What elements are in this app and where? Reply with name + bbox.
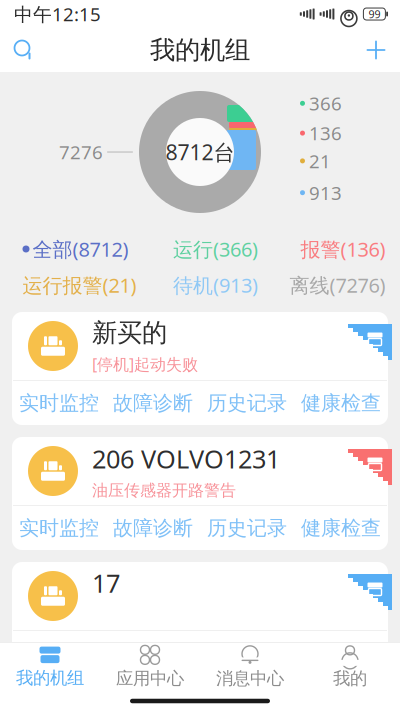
button[interactable]: 运行(366) bbox=[155, 236, 275, 262]
button[interactable]: 应用中心 bbox=[100, 643, 200, 691]
button[interactable]: 我的机组 bbox=[0, 643, 100, 691]
button[interactable]: 报警(136) bbox=[275, 236, 399, 262]
staticText: 我的 bbox=[333, 668, 367, 689]
staticText: [停机]起动失败 bbox=[92, 353, 198, 375]
button[interactable]: 实时监控 bbox=[12, 381, 106, 425]
button[interactable]: 历史记录 bbox=[200, 631, 294, 675]
staticText: 健康检查 bbox=[301, 391, 381, 415]
staticText: 7276 bbox=[59, 140, 103, 164]
button[interactable]: 待机(913) bbox=[155, 272, 275, 298]
button[interactable]: 离线(7276) bbox=[275, 272, 399, 298]
staticText: 913 bbox=[309, 180, 342, 205]
button[interactable]: 故障诊断 bbox=[106, 381, 200, 425]
staticText: 全部(8712) bbox=[32, 236, 128, 262]
button[interactable]: 故障诊断 bbox=[106, 506, 200, 550]
staticText: 实时监控 bbox=[19, 516, 99, 540]
button[interactable]: 全部(8712) bbox=[0, 236, 155, 262]
staticText: 366 bbox=[309, 91, 342, 116]
staticText: 136 bbox=[309, 121, 342, 145]
staticText: 我的机组 bbox=[150, 34, 250, 65]
button[interactable]: 运行报警(21) bbox=[0, 272, 155, 298]
staticText: 历史记录 bbox=[207, 641, 287, 665]
button[interactable]: 健康检查 bbox=[294, 381, 388, 425]
staticText: 运行(366) bbox=[173, 236, 258, 262]
button[interactable]: 历史记录 bbox=[200, 506, 294, 550]
staticText: 实时监控 bbox=[19, 391, 99, 415]
staticText: 油压传感器开路警告 bbox=[92, 480, 236, 500]
button[interactable]: 实时监控 bbox=[12, 506, 106, 550]
button[interactable]: 实时监控 bbox=[12, 631, 106, 675]
button[interactable]: 消息中心 bbox=[200, 643, 300, 691]
staticText: 应用中心 bbox=[116, 668, 184, 689]
staticText: 99 bbox=[368, 7, 380, 21]
staticText: 历史记录 bbox=[207, 391, 287, 415]
button[interactable]: 搜索 bbox=[0, 28, 48, 72]
staticText: 17 bbox=[92, 566, 120, 600]
staticText: 我的机组 bbox=[16, 667, 84, 689]
button[interactable]: 故障诊断 bbox=[106, 631, 200, 675]
button[interactable]: 添加 bbox=[352, 28, 400, 72]
staticText: 消息中心 bbox=[216, 668, 284, 689]
button[interactable]: 历史记录 bbox=[200, 381, 294, 425]
staticText: 新买的 bbox=[92, 317, 167, 348]
staticText: 8712台 bbox=[165, 138, 234, 166]
button[interactable]: 健康检查 bbox=[294, 506, 388, 550]
staticText: 离线(7276) bbox=[289, 272, 385, 298]
staticText: 故障诊断 bbox=[113, 641, 193, 665]
staticText: 报警(136) bbox=[300, 236, 385, 262]
staticText: 中午12:15 bbox=[14, 2, 101, 26]
staticText: 健康检查 bbox=[301, 641, 381, 665]
staticText: 故障诊断 bbox=[113, 391, 193, 415]
staticText: 健康检查 bbox=[301, 516, 381, 540]
button[interactable]: 我的 bbox=[300, 643, 400, 691]
staticText: 运行报警(21) bbox=[22, 272, 136, 298]
staticText: 206 VOLVO1231 bbox=[92, 442, 280, 475]
staticText: 实时监控 bbox=[19, 641, 99, 665]
staticText: 历史记录 bbox=[207, 516, 287, 540]
button[interactable]: 健康检查 bbox=[294, 631, 388, 675]
staticText: 故障诊断 bbox=[113, 516, 193, 540]
staticText: 21 bbox=[309, 148, 331, 173]
staticText: 待机(913) bbox=[173, 272, 258, 298]
